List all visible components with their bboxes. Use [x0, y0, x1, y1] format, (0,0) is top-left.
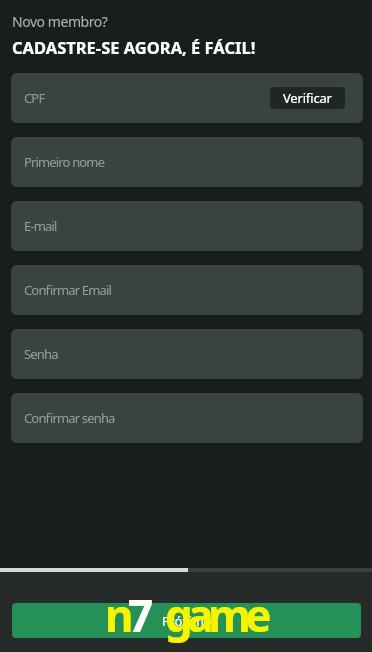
- staticText: CADASTRE-SE AGORA, É FÁCIL!: [12, 36, 256, 58]
- button[interactable]: E-mail: [11, 201, 363, 251]
- button[interactable]: CPF: [11, 73, 363, 123]
- staticText: Confirmar senha: [24, 409, 115, 427]
- button[interactable]: Primeiro nome: [11, 137, 363, 187]
- staticText: E-mail: [24, 217, 57, 235]
- staticText: Primeiro nome: [24, 153, 105, 171]
- button[interactable]: Confirmar senha: [11, 393, 363, 443]
- staticText: Verificar: [283, 89, 332, 107]
- staticText: game: [165, 585, 266, 645]
- staticText: Confirmar Email: [24, 281, 111, 299]
- staticText: Senha: [24, 345, 58, 363]
- button[interactable]: Verificar: [270, 87, 345, 109]
- staticText: 7: [128, 585, 148, 645]
- button[interactable]: Senha: [11, 329, 363, 379]
- button[interactable]: Confirmar Email: [11, 265, 363, 315]
- button[interactable]: Próximo: [12, 603, 361, 638]
- staticText: Novo membro?: [12, 12, 108, 31]
- staticText: CPF: [24, 89, 45, 107]
- staticText: n: [105, 585, 128, 645]
- staticText: Próximo: [162, 612, 212, 630]
